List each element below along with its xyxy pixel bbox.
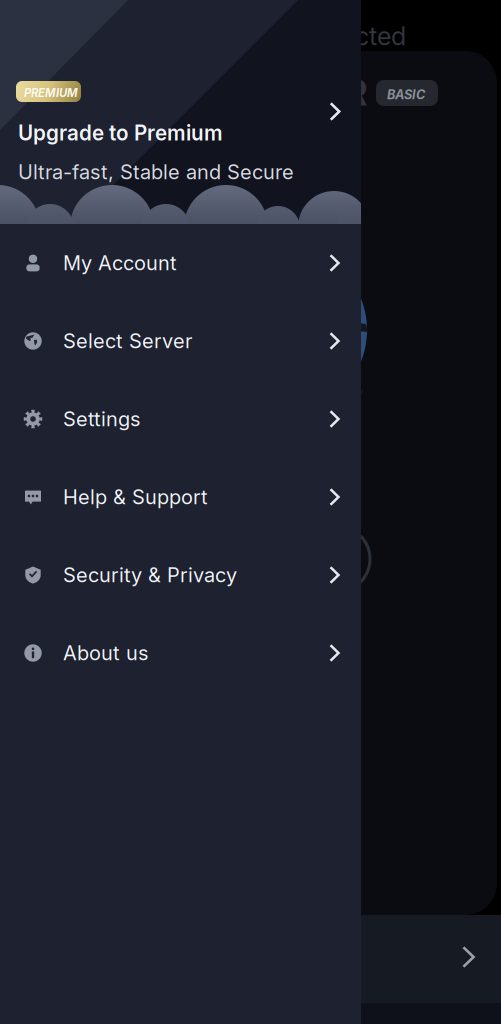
staticText: Settings [63,407,140,431]
staticText: About us [63,641,148,665]
button[interactable]: Help & Support [0,458,361,536]
staticText: Upgrade to Premium [18,120,223,145]
staticText: PREMIUM [24,86,78,100]
staticText: Not Connected [229,21,406,51]
button[interactable]: My Account [0,224,361,302]
staticText: Ultra-fast, Stable and Secure [18,160,294,184]
staticText: BASIC [387,87,425,102]
button[interactable]: Settings [0,380,361,458]
button[interactable]: About us [0,614,361,692]
button[interactable]: Security & Privacy [0,536,361,614]
staticText: R [345,72,368,114]
staticText: Security & Privacy [63,563,237,587]
button[interactable]: Select Server [0,302,361,380]
staticText: Select Server [63,329,192,353]
staticText: My Account [63,251,177,275]
button[interactable]: PREMIUM [0,0,361,224]
staticText: Help & Support [63,485,208,509]
